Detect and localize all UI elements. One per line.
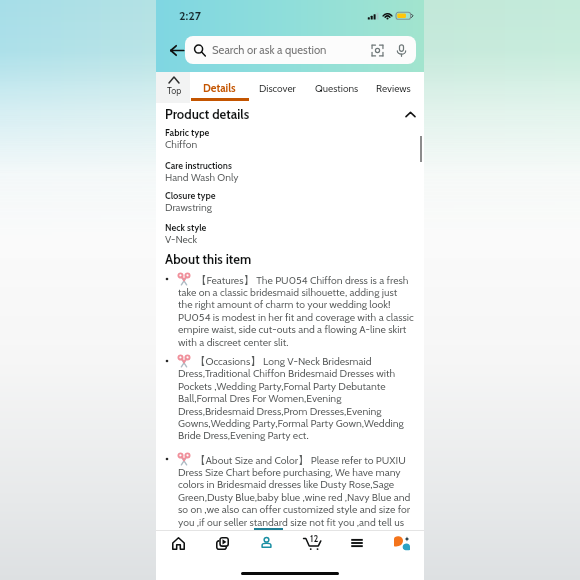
button[interactable]: Back <box>163 36 191 64</box>
staticText: 【Features】 The PU054 Chiffon dress is a … <box>196 274 409 287</box>
button[interactable]: Menu <box>334 531 379 563</box>
staticText: Questions <box>315 82 359 94</box>
staticText: you ,if our seller standard size not fit… <box>178 516 404 529</box>
button[interactable]: Account <box>244 531 289 563</box>
staticText: with a discreet center slit. <box>178 336 289 349</box>
button[interactable]: Cart, 12 items <box>289 531 334 563</box>
staticText: the right amount of charm to your weddin… <box>178 298 391 311</box>
staticText: Drawstring <box>165 201 212 214</box>
button[interactable]: Home <box>156 531 200 563</box>
staticText: Chiffon <box>165 138 198 151</box>
button[interactable]: Voice search <box>389 38 413 62</box>
staticText: Closure type <box>165 190 216 201</box>
staticText: Top <box>167 85 182 96</box>
staticText: 【About Size and Color】 Please refer to P… <box>195 454 406 467</box>
staticText: V-Neck <box>165 233 198 246</box>
staticText: Bride Dress,Evening Party ect. <box>178 429 309 442</box>
button[interactable]: Search or ask a question <box>185 36 416 64</box>
staticText: 【Occasions】 Long V-Neck Bridesmaid <box>195 355 372 368</box>
staticText: Pockets ,Wedding Party,Fomal Party Debut… <box>178 380 386 393</box>
staticText: Gowns,Wedding Party,Formal Party Gown,We… <box>178 417 404 430</box>
button[interactable]: Questions <box>307 72 366 103</box>
staticText: empire waist, side cut-outs and a flowin… <box>178 323 407 336</box>
button[interactable]: Product details <box>165 106 415 122</box>
staticText: so on ,we also can offer customized styl… <box>178 503 411 516</box>
staticText: Dress Size Chart before purchasing, We h… <box>178 466 401 479</box>
staticText: Neck style <box>165 222 207 233</box>
staticText: Product details <box>165 106 250 122</box>
staticText: Green,Dusty Blue,baby blue ,wine red ,Na… <box>178 491 411 504</box>
staticText: 12 <box>310 533 319 544</box>
staticText: Hand Wash Only <box>165 171 239 184</box>
staticText: Dress,Traditional Chiffon Bridesmaid Dre… <box>178 367 396 380</box>
staticText: Reviews <box>376 82 411 94</box>
staticText: PU054 is modest in her fit and coverage … <box>178 311 414 324</box>
staticText: About this item <box>165 251 252 267</box>
staticText: Dress,Bridesmaid Dress,Prom Dresses,Even… <box>178 405 382 418</box>
staticText: Care instructions <box>165 160 232 171</box>
staticText: Search or ask a question <box>212 43 327 57</box>
button[interactable]: Prime Video <box>200 531 244 563</box>
button[interactable]: Details <box>190 72 248 103</box>
button[interactable]: Rufus assistant <box>379 531 424 563</box>
staticText: 2:27 <box>179 8 202 23</box>
staticText: Fabric type <box>165 127 210 138</box>
button[interactable]: Scan with camera <box>365 38 389 62</box>
staticText: take on a classic bridesmaid silhouette,… <box>178 286 398 299</box>
button[interactable]: Discover <box>249 72 306 103</box>
button[interactable]: Scroll to top <box>156 72 190 103</box>
staticText: Ball,Formal Dres For Women,Evening <box>178 392 342 405</box>
staticText: Discover <box>259 82 296 94</box>
button[interactable]: Reviews <box>365 72 422 103</box>
staticText: colors in Bridesmaid dresses like Dusty … <box>178 478 395 491</box>
staticText: Details <box>203 81 236 94</box>
